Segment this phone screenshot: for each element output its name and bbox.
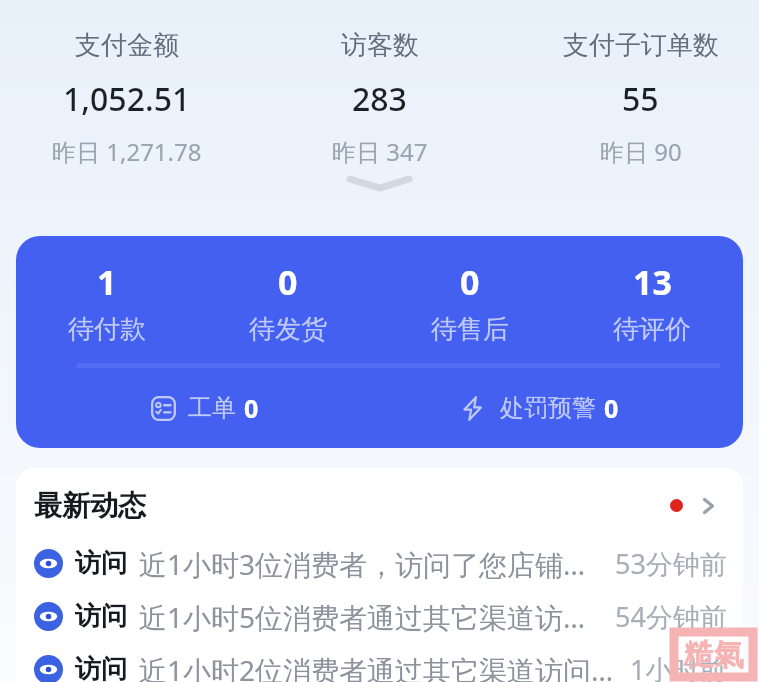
button[interactable]: 访客数 bbox=[253, 29, 506, 168]
staticText: 待售后 bbox=[431, 313, 509, 346]
staticText: 1 bbox=[97, 259, 117, 305]
staticText: 处罚预警 bbox=[500, 393, 596, 423]
staticText: 访问 bbox=[75, 653, 127, 682]
staticText: 0 bbox=[460, 259, 480, 305]
staticText: 最新动态 bbox=[34, 488, 146, 523]
staticText: 53分钟前 bbox=[615, 545, 727, 582]
staticText: 54分钟前 bbox=[615, 598, 727, 635]
staticText: 13 bbox=[633, 259, 672, 305]
staticText: 近1小时3位消费者，访问了您店铺… bbox=[139, 545, 609, 583]
staticText: 近1小时5位消费者通过其它渠道访… bbox=[139, 598, 609, 636]
staticText: 1,052.51 bbox=[63, 77, 191, 121]
staticText: 0 bbox=[604, 391, 619, 425]
staticText: 待付款 bbox=[68, 313, 146, 346]
button[interactable]: 1 bbox=[16, 259, 197, 346]
staticText: 糙氣 bbox=[684, 636, 744, 674]
staticText: 工单 bbox=[188, 393, 236, 423]
button[interactable]: 访问 bbox=[16, 643, 743, 682]
staticText: 0 bbox=[244, 391, 259, 425]
staticText: 0 bbox=[278, 259, 298, 305]
button[interactable]: More bbox=[694, 491, 723, 520]
button[interactable]: 访问 bbox=[16, 537, 743, 590]
staticText: 待发货 bbox=[249, 313, 327, 346]
staticText: 55 bbox=[622, 77, 659, 121]
staticText: 待评价 bbox=[613, 313, 691, 346]
staticText: 近1小时2位消费者通过其它渠道访问… bbox=[139, 651, 624, 682]
other: Expand bbox=[347, 176, 412, 192]
staticText: 访客数 bbox=[341, 29, 419, 62]
staticText: 支付金额 bbox=[75, 29, 179, 62]
button[interactable]: 0 bbox=[379, 259, 561, 346]
staticText: 昨日 1,271.78 bbox=[52, 135, 202, 168]
button[interactable]: 处罚预警 bbox=[459, 391, 619, 425]
button[interactable]: 支付金额 bbox=[0, 29, 253, 168]
button[interactable]: 13 bbox=[561, 259, 743, 346]
button[interactable]: 0 bbox=[197, 259, 379, 346]
staticText: 昨日 90 bbox=[600, 135, 682, 168]
staticText: 283 bbox=[352, 77, 407, 121]
staticText: 支付子订单数 bbox=[563, 29, 719, 62]
staticText: 访问 bbox=[75, 547, 127, 580]
staticText: 访问 bbox=[75, 600, 127, 633]
button[interactable]: 工单 bbox=[150, 391, 259, 425]
button[interactable]: 1 bbox=[16, 236, 743, 448]
staticText: 昨日 347 bbox=[332, 135, 428, 168]
button[interactable]: 访问 bbox=[16, 590, 743, 643]
staticText: 1小时前 bbox=[630, 651, 727, 682]
button[interactable]: 支付子订单数 bbox=[514, 29, 759, 168]
